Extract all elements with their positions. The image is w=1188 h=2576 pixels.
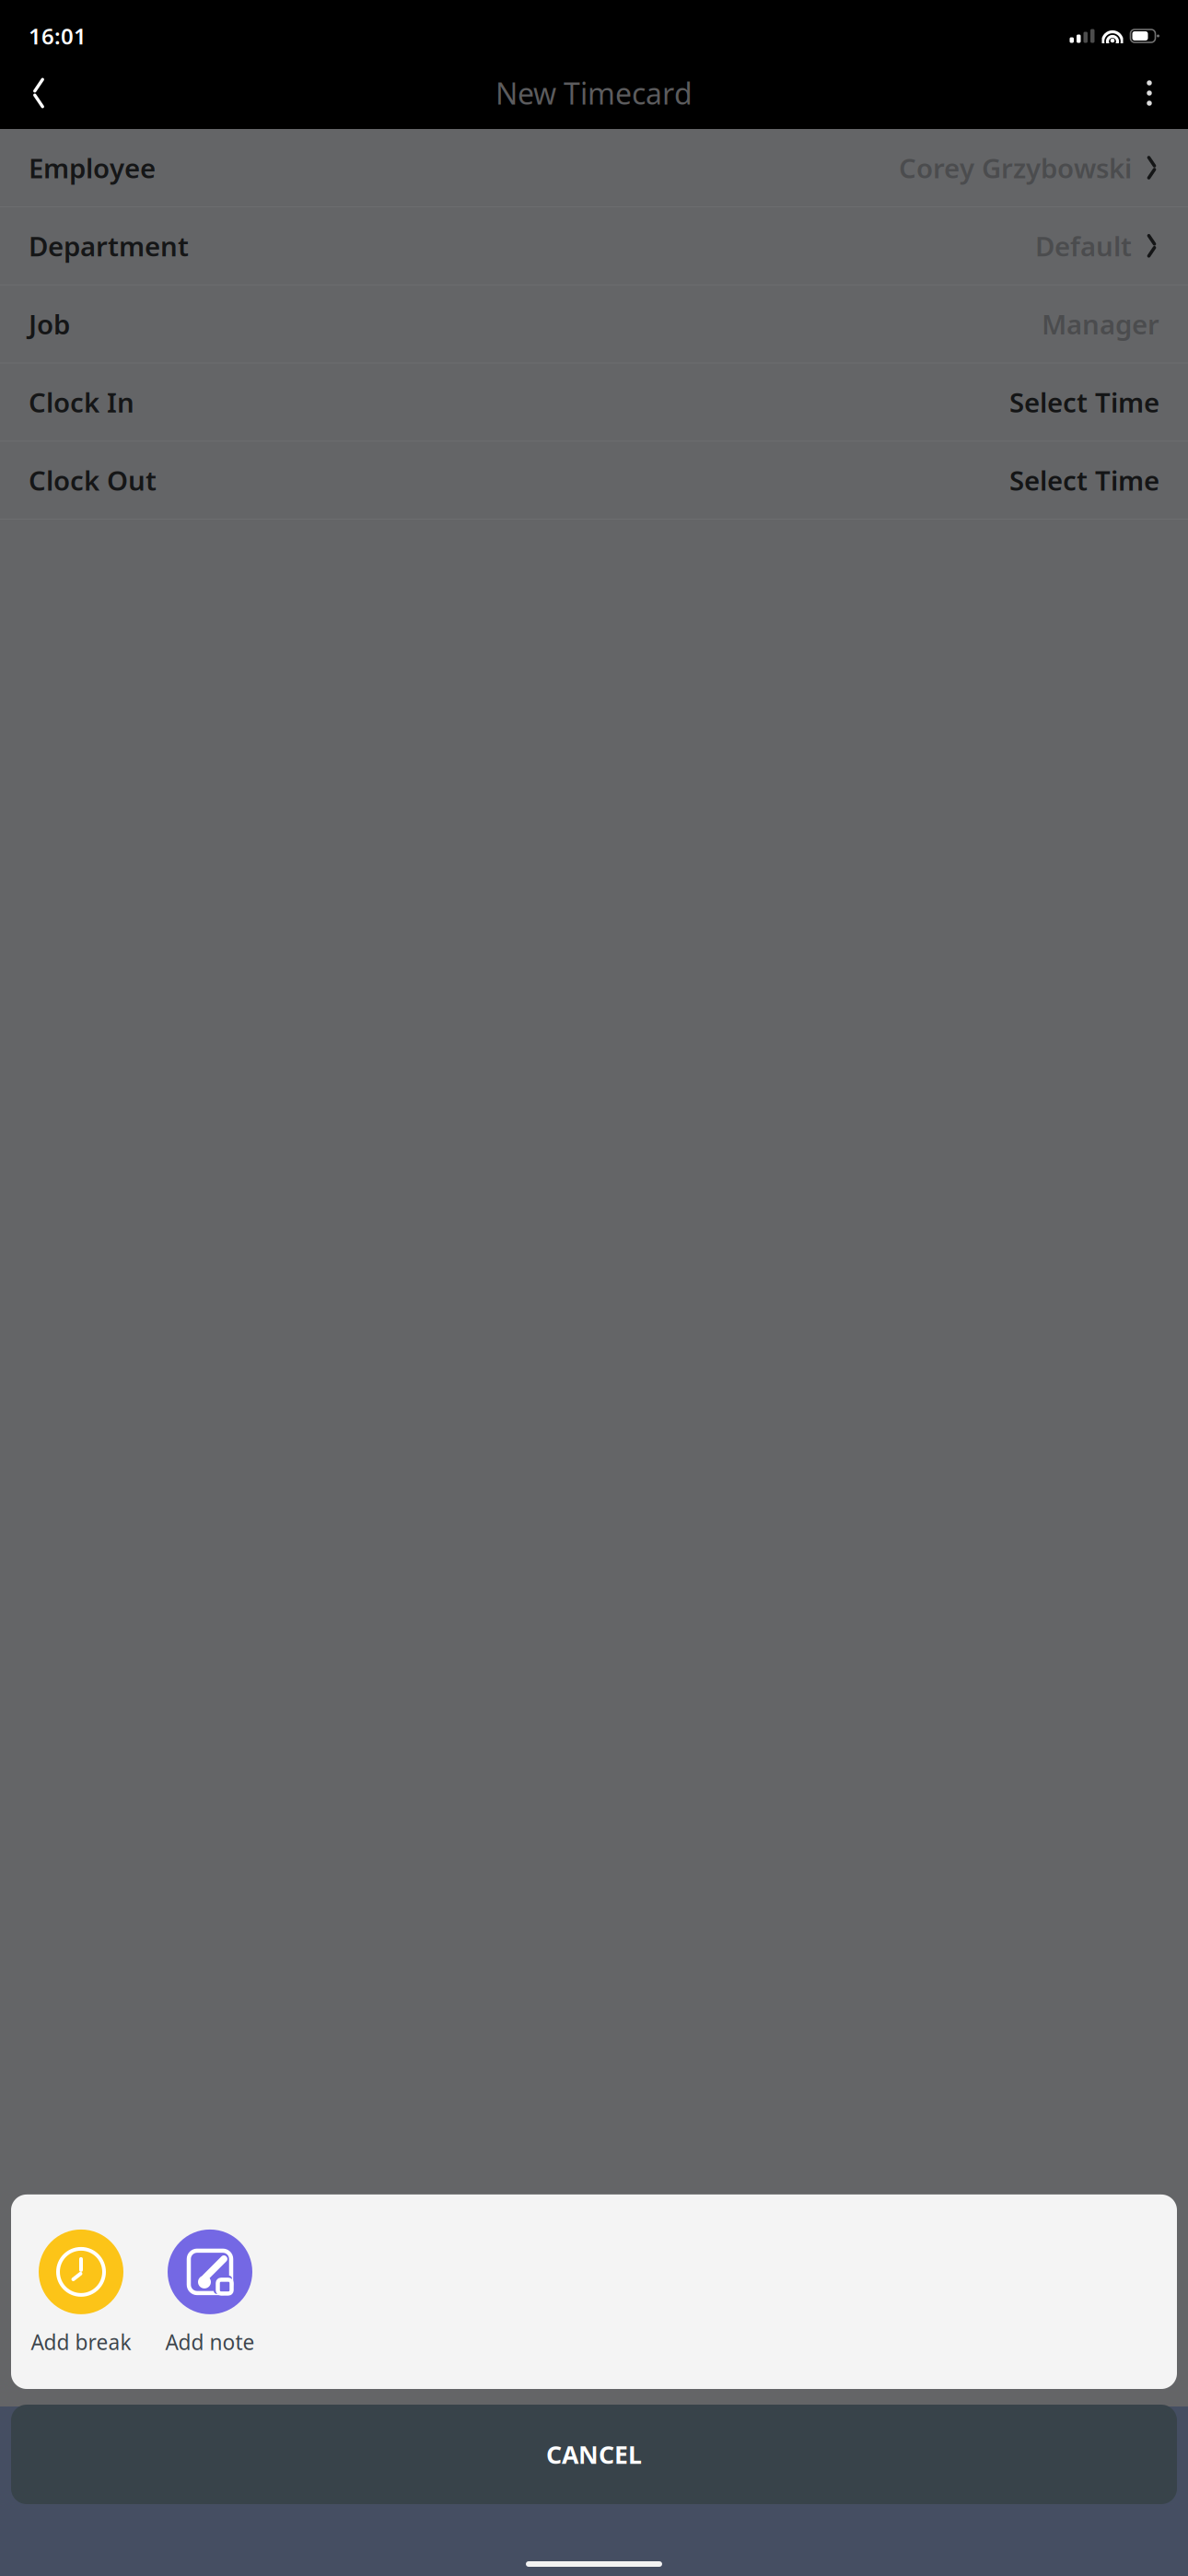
staticText: Clock Out xyxy=(29,462,157,498)
staticText: Select Time xyxy=(1009,384,1159,420)
button[interactable]: Add note xyxy=(146,2229,274,2356)
button[interactable]: Employee xyxy=(0,129,1188,207)
staticText: Manager xyxy=(1042,306,1159,342)
staticText: Select Time xyxy=(1009,462,1159,498)
button[interactable]: CANCEL xyxy=(11,2405,1177,2504)
button[interactable]: Back xyxy=(9,64,68,123)
button[interactable]: Add break xyxy=(17,2229,146,2356)
staticText: Default xyxy=(1035,228,1132,264)
staticText: Department xyxy=(29,228,189,264)
staticText: CANCEL xyxy=(546,2438,642,2471)
staticText: Clock In xyxy=(29,384,134,420)
button[interactable]: Job xyxy=(0,285,1188,363)
staticText: Employee xyxy=(29,150,156,186)
staticText: Job xyxy=(29,306,70,342)
button[interactable]: Clock Out xyxy=(0,441,1188,520)
button[interactable]: Department xyxy=(0,207,1188,285)
staticText: 16:01 xyxy=(29,21,87,51)
staticText: Add break xyxy=(31,2328,131,2356)
staticText: Corey Grzybowski xyxy=(899,150,1132,186)
staticText: New Timecard xyxy=(495,74,693,113)
button[interactable]: Clock In xyxy=(0,363,1188,441)
button[interactable]: More options xyxy=(1120,64,1179,123)
staticText: Add note xyxy=(165,2328,255,2356)
